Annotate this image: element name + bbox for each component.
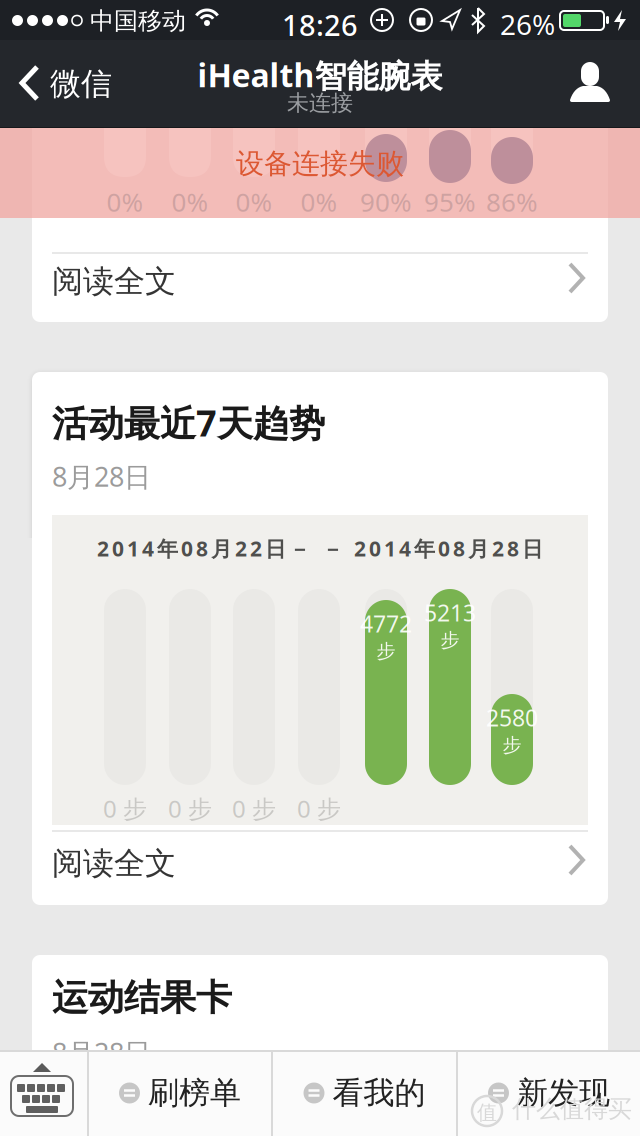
staticText: 阅读全文 <box>52 844 176 883</box>
staticText: 0 步 <box>103 792 147 825</box>
staticText: 0% <box>106 184 143 219</box>
staticText: 运动结果卡 <box>52 975 232 1020</box>
staticText: 中国移动 <box>90 6 186 36</box>
staticText: 活动最近7天趋势 <box>52 398 325 447</box>
staticText: iHealth智能腕表 <box>197 53 442 97</box>
staticText: 设备连接失败 <box>236 146 404 181</box>
staticText: 0% <box>235 184 272 219</box>
staticText: 0% <box>300 184 337 219</box>
button[interactable] <box>11 1062 81 1126</box>
staticText: 看我的 <box>332 1073 425 1113</box>
staticText: 步 <box>440 628 459 652</box>
staticText: 95% <box>424 184 476 219</box>
staticText: 步 <box>502 733 521 757</box>
button[interactable]: 阅读全文 <box>32 832 608 903</box>
staticText: 阅读全文 <box>52 262 176 301</box>
staticText: 微信 <box>50 64 112 104</box>
staticText: 90% <box>360 184 412 219</box>
staticText: 2014年08月22日－ － 2014年08月28日 <box>97 534 543 563</box>
staticText: 86% <box>486 184 538 219</box>
staticText: 值 <box>477 1100 497 1125</box>
staticText: 26% <box>500 5 555 43</box>
staticText: 刷榜单 <box>148 1073 241 1113</box>
staticText: 2580 <box>486 702 538 733</box>
staticText: 8月28日 <box>52 1034 151 1071</box>
button[interactable]: 微信 <box>20 40 112 128</box>
staticText: 5213 <box>424 597 476 628</box>
staticText: 新发现 <box>517 1073 610 1113</box>
staticText: 4772 <box>360 608 412 639</box>
button[interactable]: 看我的 <box>273 1050 456 1136</box>
staticText: 18:26 <box>282 5 358 44</box>
button[interactable]: 刷榜单 <box>89 1050 271 1136</box>
staticText: 0 步 <box>297 792 341 825</box>
staticText: 0% <box>171 184 208 219</box>
button[interactable]: 新发现 <box>458 1050 640 1136</box>
button[interactable] <box>560 62 620 122</box>
button[interactable]: 阅读全文 <box>32 254 608 322</box>
staticText: 什么值得买 <box>512 1094 632 1124</box>
staticText: 步 <box>376 639 395 663</box>
staticText: 0 步 <box>168 792 212 825</box>
staticText: 0 步 <box>232 792 276 825</box>
staticText: 未连接 <box>287 89 353 117</box>
staticText: 8月28日 <box>52 458 151 495</box>
